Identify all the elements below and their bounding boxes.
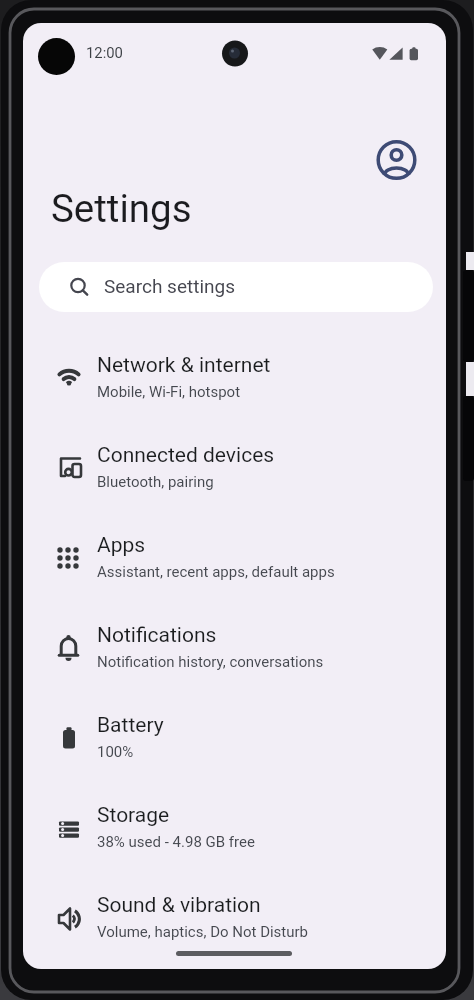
button[interactable]: Sound & vibration	[23, 875, 446, 965]
staticText: Settings	[51, 186, 192, 231]
staticText: Connected devices	[97, 443, 275, 468]
button[interactable]: Storage	[23, 785, 446, 875]
button[interactable]: Search settings	[39, 262, 433, 312]
staticText: Volume, haptics, Do Not Disturb	[97, 923, 309, 941]
staticText: Assistant, recent apps, default apps	[97, 563, 335, 581]
staticText: 12:00	[86, 44, 123, 61]
staticText: Sound & vibration	[97, 893, 261, 918]
staticText: Apps	[97, 533, 146, 558]
button[interactable]	[375, 138, 419, 182]
staticText: Battery	[97, 713, 164, 738]
button[interactable]: Battery	[23, 695, 446, 785]
button[interactable]: Connected devices	[23, 425, 446, 515]
staticText: Network & internet	[97, 353, 271, 378]
staticText: Notifications	[97, 623, 217, 648]
staticText: Notification history, conversations	[97, 653, 324, 671]
button[interactable]: Notifications	[23, 605, 446, 695]
staticText: Bluetooth, pairing	[97, 473, 214, 491]
button[interactable]: Network & internet	[23, 335, 446, 425]
staticText: Search settings	[104, 275, 235, 297]
staticText: Storage	[97, 803, 170, 828]
button[interactable]: Apps	[23, 515, 446, 605]
staticText: 100%	[97, 743, 134, 761]
staticText: 38% used - 4.98 GB free	[97, 833, 255, 851]
staticText: Mobile, Wi-Fi, hotspot	[97, 383, 241, 401]
